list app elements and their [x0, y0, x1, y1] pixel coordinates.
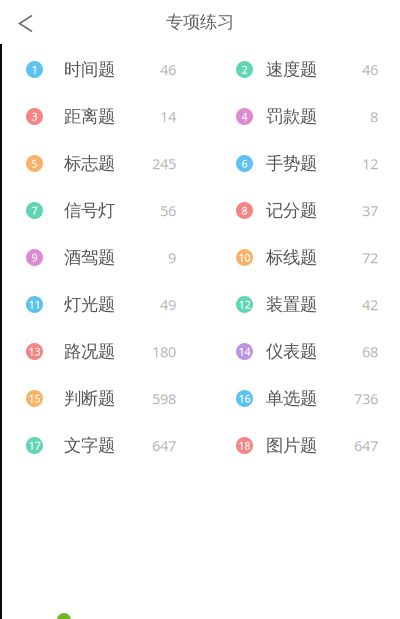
staticText: 装置题 [266, 294, 317, 315]
staticText: 16 [238, 391, 250, 406]
staticText: 5 [31, 156, 37, 171]
staticText: 49 [160, 295, 176, 314]
staticText: 245 [152, 154, 176, 173]
staticText: 6 [241, 156, 247, 171]
staticText: 56 [160, 201, 176, 220]
staticText: 13 [28, 344, 40, 359]
button[interactable]: 16 [236, 375, 378, 422]
staticText: 180 [152, 342, 176, 361]
staticText: 37 [362, 201, 378, 220]
staticText: 17 [28, 438, 40, 453]
staticText: 647 [152, 436, 176, 455]
staticText: 11 [28, 297, 40, 312]
staticText: 距离题 [64, 106, 115, 127]
staticText: 14 [238, 344, 250, 359]
staticText: 判断题 [64, 388, 115, 409]
button[interactable]: 17 [26, 422, 176, 469]
staticText: 手势题 [266, 153, 317, 174]
button[interactable]: 4 [236, 93, 378, 140]
staticText: 信号灯 [64, 200, 115, 221]
button[interactable]: 6 [236, 140, 378, 187]
staticText: 酒驾题 [64, 247, 115, 268]
staticText: 46 [160, 60, 176, 79]
staticText: 3 [31, 109, 37, 124]
staticText: 12 [238, 297, 250, 312]
staticText: 文字题 [64, 435, 115, 456]
staticText: 速度题 [266, 59, 317, 80]
staticText: 单选题 [266, 388, 317, 409]
staticText: 12 [362, 154, 378, 173]
staticText: 68 [362, 342, 378, 361]
staticText: 8 [370, 107, 378, 126]
staticText: 时间题 [64, 59, 115, 80]
staticText: 图片题 [266, 435, 317, 456]
button[interactable]: 14 [236, 328, 378, 375]
staticText: 记分题 [266, 200, 317, 221]
button[interactable]: 8 [236, 187, 378, 234]
button[interactable]: Back [0, 0, 44, 44]
staticText: 14 [160, 107, 176, 126]
button[interactable]: 5 [26, 140, 176, 187]
staticText: 1 [31, 62, 37, 77]
staticText: 标线题 [266, 247, 317, 268]
staticText: 专项练习 [166, 11, 234, 33]
button[interactable]: 18 [236, 422, 378, 469]
staticText: 15 [28, 391, 40, 406]
staticText: 9 [168, 248, 176, 267]
staticText: 18 [238, 438, 250, 453]
button[interactable]: 3 [26, 93, 176, 140]
staticText: 42 [362, 295, 378, 314]
button[interactable]: 13 [26, 328, 176, 375]
staticText: 736 [354, 389, 378, 408]
button[interactable]: 11 [26, 281, 176, 328]
staticText: 4 [241, 109, 247, 124]
staticText: 标志题 [64, 153, 115, 174]
staticText: 2 [241, 62, 247, 77]
staticText: 72 [362, 248, 378, 267]
staticText: 罚款题 [266, 106, 317, 127]
button[interactable]: 9 [26, 234, 176, 281]
staticText: 598 [152, 389, 176, 408]
staticText: 仪表题 [266, 341, 317, 362]
staticText: 路况题 [64, 341, 115, 362]
staticText: 8 [241, 203, 247, 218]
button[interactable]: 12 [236, 281, 378, 328]
staticText: 10 [238, 250, 250, 265]
button[interactable]: 2 [236, 46, 378, 93]
staticText: 46 [362, 60, 378, 79]
button[interactable]: 15 [26, 375, 176, 422]
button[interactable]: Practice [24, 613, 104, 619]
staticText: 7 [31, 203, 37, 218]
staticText: 9 [31, 250, 37, 265]
button[interactable]: 7 [26, 187, 176, 234]
staticText: 灯光题 [64, 294, 115, 315]
button[interactable]: 10 [236, 234, 378, 281]
button[interactable]: 1 [26, 46, 176, 93]
staticText: 647 [354, 436, 378, 455]
